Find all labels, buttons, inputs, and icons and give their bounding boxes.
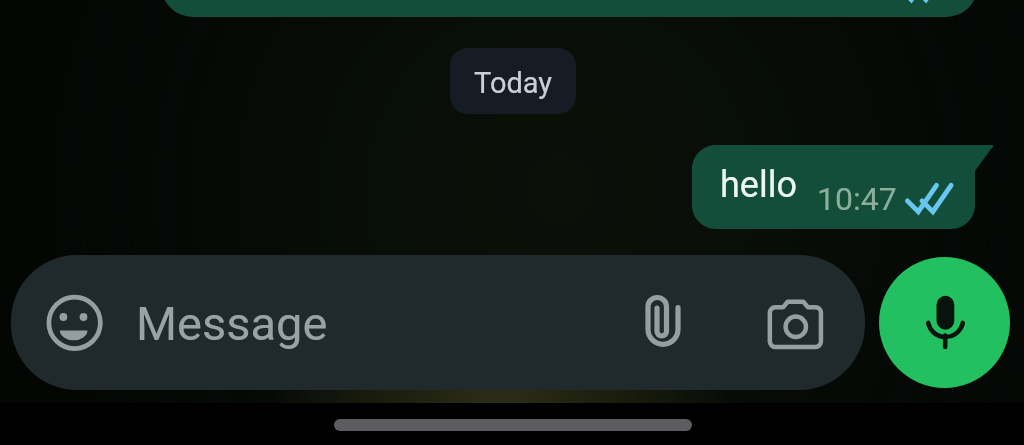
- button[interactable]: Attach: [627, 285, 701, 359]
- button[interactable]: Record voice message: [879, 257, 1010, 388]
- button[interactable]: Emoji keyboard: [11, 255, 865, 390]
- staticText: Message: [136, 296, 328, 351]
- button[interactable]: Today: [450, 48, 576, 114]
- staticText: 10:47: [817, 180, 897, 218]
- button[interactable]: Camera: [759, 288, 833, 362]
- staticText: hello: [720, 164, 797, 206]
- staticText: Today: [474, 66, 553, 100]
- button[interactable]: hello: [692, 145, 994, 229]
- button[interactable]: Emoji keyboard: [38, 286, 113, 361]
